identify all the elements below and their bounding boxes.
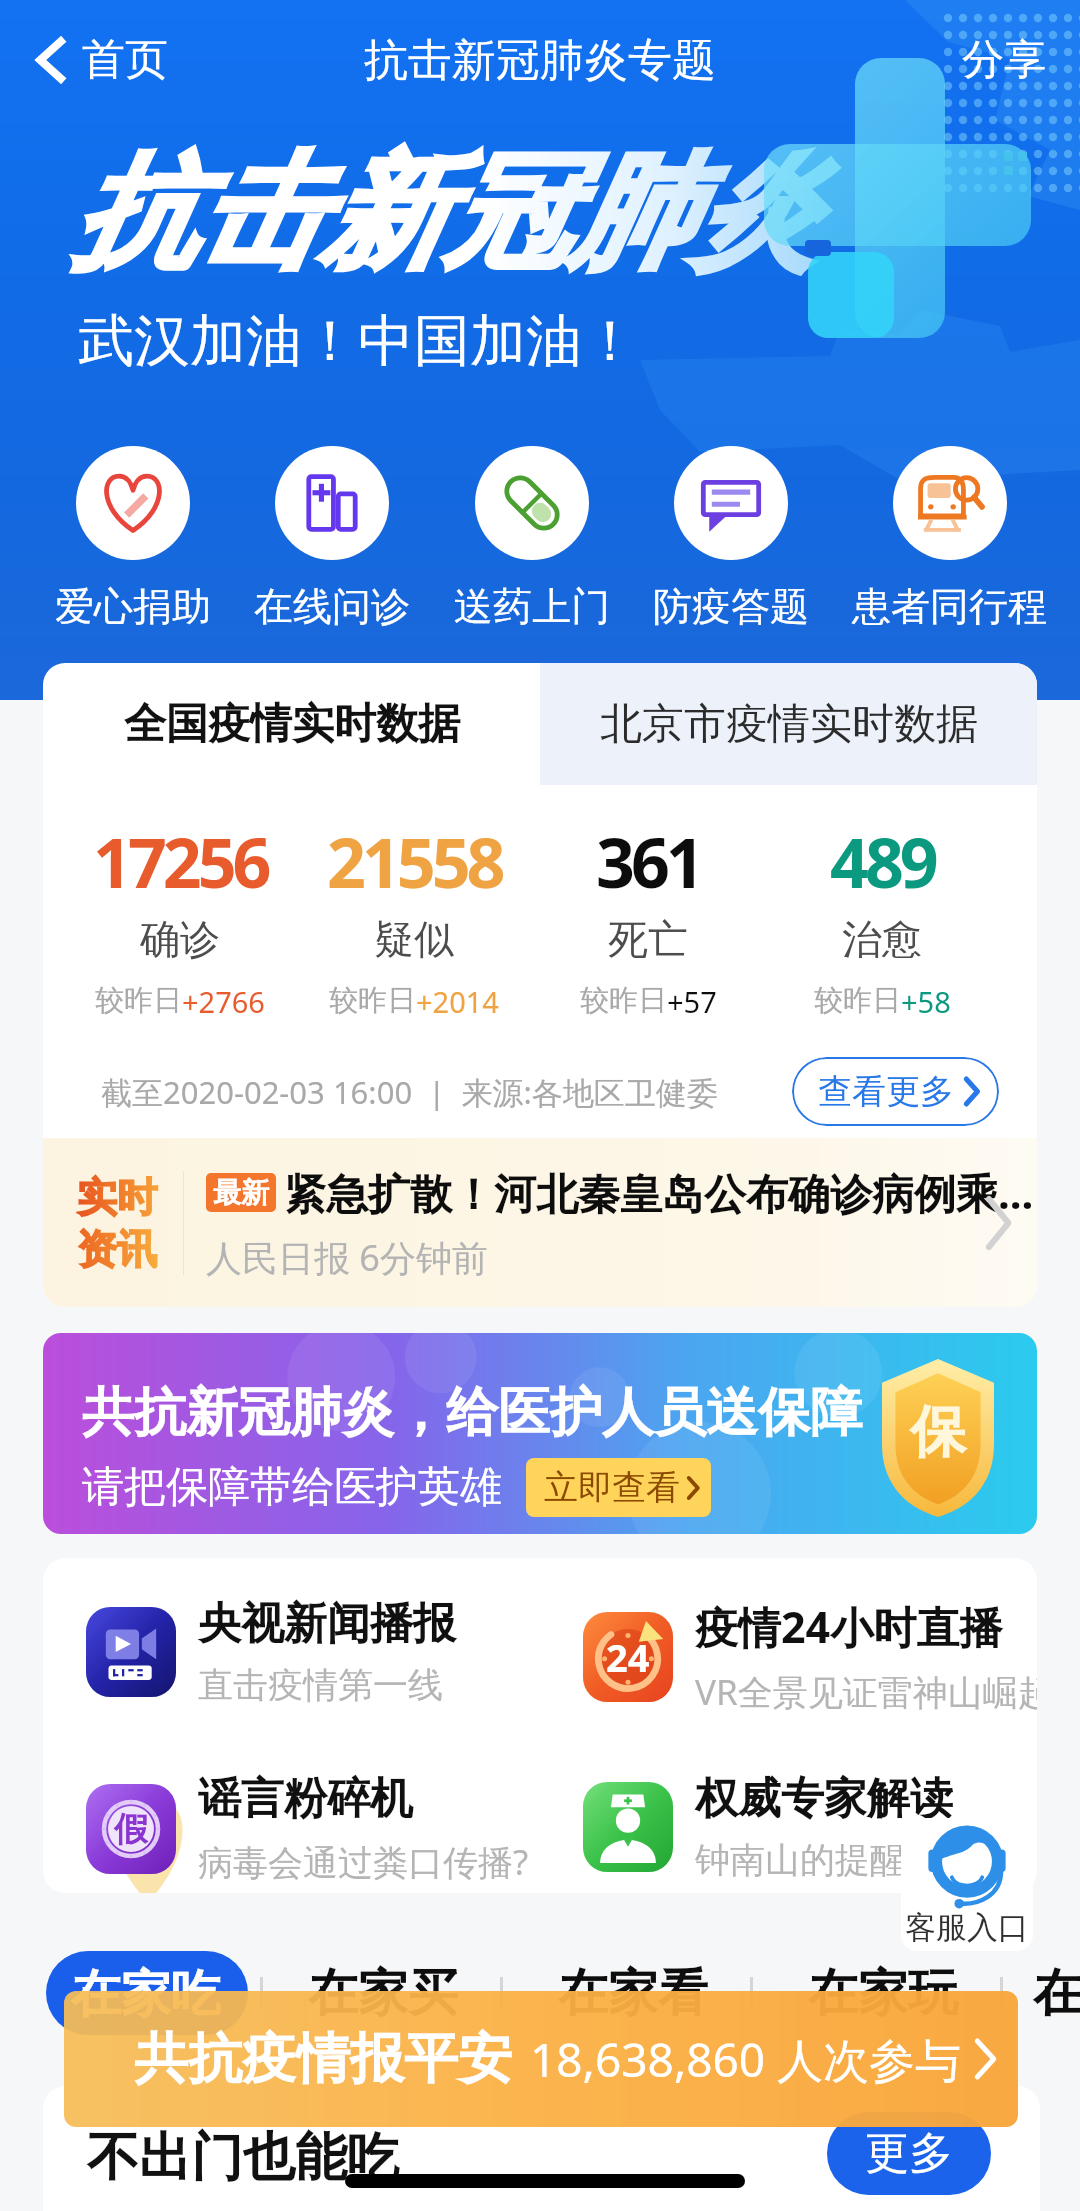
button[interactable]: 爱心捐助 xyxy=(55,446,211,631)
staticText: 北京市疫情实时数据 xyxy=(600,698,978,751)
staticText: 18,638,860 人次参与 xyxy=(530,2028,962,2091)
button[interactable]: 在家玩 xyxy=(808,1962,958,2025)
button[interactable]: 北京市疫情实时数据 xyxy=(540,663,1037,785)
staticText: 在家玩 xyxy=(808,1962,958,2025)
staticText: +57 xyxy=(667,982,717,1021)
button[interactable]: 患者同行程 xyxy=(852,446,1047,631)
staticText: 在家吃 xyxy=(71,1963,221,2023)
button[interactable]: 共抗疫情报平安 xyxy=(64,1991,1018,2127)
staticText: 资讯 xyxy=(77,1224,157,1274)
staticText: 死亡 xyxy=(608,914,688,964)
staticText: 在家买 xyxy=(308,1962,458,2025)
staticText: 权威专家解读 xyxy=(695,1772,953,1826)
staticText: 共抗疫情报平安 xyxy=(134,2025,512,2093)
button[interactable]: 24 xyxy=(540,1597,1037,1716)
button[interactable]: 返回首页 xyxy=(0,23,192,97)
button[interactable]: 在 xyxy=(1033,1962,1080,2025)
staticText: 共抗新冠肺炎，给医护人员送保障 xyxy=(82,1380,862,1446)
staticText: 最新 xyxy=(213,1175,269,1210)
staticText: 假 xyxy=(114,1808,148,1851)
staticText: 患者同行程 xyxy=(852,582,1047,631)
button[interactable]: 查看更多 xyxy=(792,1057,999,1126)
staticText: +2766 xyxy=(182,982,265,1021)
staticText: 治愈 xyxy=(842,914,922,964)
staticText: 确诊 xyxy=(140,914,220,964)
staticText: 直击疫情第一线 xyxy=(198,1663,443,1707)
staticText: 查看更多 xyxy=(818,1070,954,1113)
staticText: 较昨日 xyxy=(814,982,901,1019)
staticText: 更多 xyxy=(865,2126,953,2181)
staticText: 钟南山的提醒应验了 xyxy=(695,1838,1010,1882)
staticText: 较昨日 xyxy=(95,982,182,1019)
staticText: 病毒会通过粪口传播? xyxy=(198,1838,529,1886)
staticText: 紧急扩散！河北秦皇岛公布确诊病例乘... xyxy=(284,1164,977,1221)
staticText: 疫情24小时直播 xyxy=(695,1597,1003,1656)
staticText: 不出门也能吃 xyxy=(87,2125,399,2191)
staticText: 24 xyxy=(606,1631,650,1683)
staticText: 立即查看 xyxy=(544,1466,680,1509)
button[interactable]: 假 xyxy=(43,1772,540,1886)
staticText: 较昨日 xyxy=(580,982,667,1019)
button[interactable]: 在家吃 xyxy=(46,1951,248,2035)
button[interactable]: 分享 xyxy=(928,22,1080,99)
staticText: +2014 xyxy=(416,982,499,1021)
button[interactable]: 在家看 xyxy=(558,1962,708,2025)
staticText: 489 xyxy=(830,815,935,908)
staticText: 在线问诊 xyxy=(254,582,410,631)
button[interactable]: 实时 xyxy=(43,1138,1037,1307)
staticText: VR全景见证雷神山崛起 xyxy=(695,1668,1037,1716)
staticText: 防疫答题 xyxy=(653,582,809,631)
button[interactable]: 共抗新冠肺炎，给医护人员送保障 xyxy=(43,1333,1037,1534)
button[interactable]: 防疫答题 xyxy=(653,446,809,631)
staticText: 爱心捐助 xyxy=(55,582,211,631)
staticText: 361 xyxy=(596,815,701,908)
staticText: 保 xyxy=(910,1397,966,1468)
staticText: 17256 xyxy=(93,815,268,908)
staticText: 谣言粉碎机 xyxy=(198,1772,413,1826)
button[interactable]: 央视新闻播报 xyxy=(43,1597,540,1707)
staticText: 在家看 xyxy=(558,1962,708,2025)
button[interactable]: 权威专家解读 xyxy=(540,1772,1037,1882)
staticText: 分享 xyxy=(962,34,1046,87)
staticText: 截至2020-02-03 16:00 | 来源:各地区卫健委 xyxy=(101,1071,718,1113)
staticText: 疑似 xyxy=(374,914,454,964)
button[interactable]: 送药上门 xyxy=(454,446,610,631)
staticText: 在 xyxy=(1033,1962,1080,2025)
staticText: 央视新闻播报 xyxy=(198,1597,456,1651)
staticText: 抗击新冠肺炎 xyxy=(72,136,816,292)
staticText: 武汉加油！中国加油！ xyxy=(78,306,638,377)
staticText: 人民日报 6分钟前 xyxy=(206,1233,488,1282)
staticText: 较昨日 xyxy=(329,982,416,1019)
staticText: 实时 xyxy=(77,1172,157,1222)
staticText: 21558 xyxy=(327,815,502,908)
button[interactable]: 在线问诊 xyxy=(254,446,410,631)
button[interactable]: 全国疫情实时数据 xyxy=(43,663,540,785)
button[interactable]: 更多 xyxy=(827,2112,991,2195)
staticText: 首页 xyxy=(82,33,168,87)
staticText: 全国疫情实时数据 xyxy=(124,698,460,751)
button[interactable]: 在家买 xyxy=(308,1962,458,2025)
staticText: +58 xyxy=(901,982,951,1021)
staticText: 请把保障带给医护英雄 xyxy=(82,1461,502,1514)
staticText: 客服入口 xyxy=(905,1908,1029,1947)
button[interactable]: 客服入口 xyxy=(901,1818,1033,1951)
staticText: 送药上门 xyxy=(454,582,610,631)
staticText: 抗击新冠肺炎专题 xyxy=(364,33,716,88)
